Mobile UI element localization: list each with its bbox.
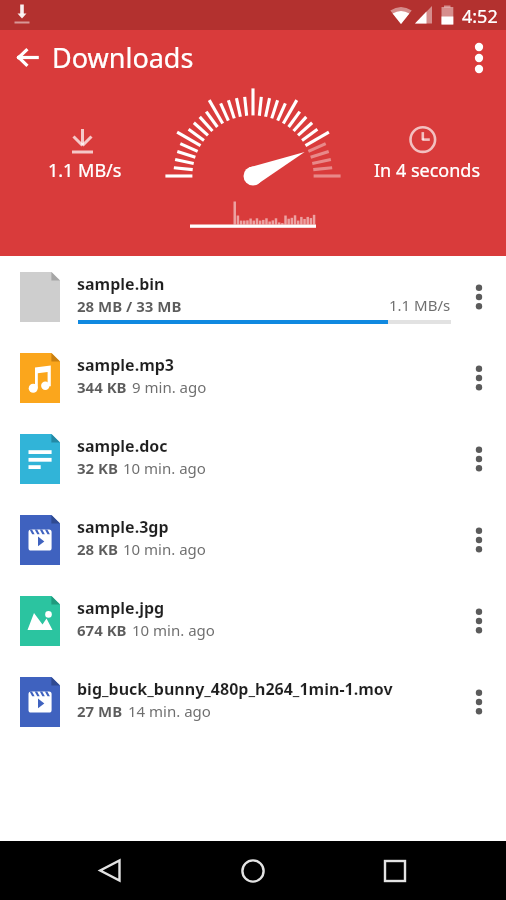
staticText: 10 min. ago — [132, 620, 215, 640]
button[interactable]: sample.bin — [0, 256, 506, 337]
staticText: 344 KB — [77, 377, 127, 397]
button[interactable]: Back — [4, 30, 50, 86]
button[interactable]: More options — [451, 661, 506, 742]
button[interactable]: More options — [451, 256, 506, 337]
button[interactable]: sample.3gp — [0, 499, 506, 580]
staticText: 674 KB — [77, 620, 127, 640]
staticText: In 4 seconds — [374, 158, 481, 183]
button[interactable]: More options — [451, 499, 506, 580]
staticText: 28 KB — [77, 539, 118, 559]
button[interactable]: big_buck_bunny_480p_h264_1min-1.mov — [0, 661, 506, 742]
staticText: sample.mp3 — [77, 354, 175, 376]
staticText: sample.bin — [77, 273, 165, 295]
staticText: 4:52 — [462, 4, 498, 29]
button[interactable]: Home — [217, 841, 289, 900]
button[interactable]: sample.doc — [0, 418, 506, 499]
button[interactable]: Back — [74, 841, 146, 900]
staticText: big_buck_bunny_480p_h264_1min-1.mov — [77, 678, 393, 700]
button[interactable]: More options — [451, 337, 506, 418]
staticText: sample.jpg — [77, 597, 165, 619]
staticText: 1.1 MB/s — [48, 158, 122, 183]
button[interactable]: Recents — [359, 841, 431, 900]
staticText: 10 min. ago — [123, 458, 206, 478]
staticText: 28 MB / 33 MB — [77, 296, 182, 316]
button[interactable]: More options — [451, 418, 506, 499]
button[interactable]: sample.mp3 — [0, 337, 506, 418]
staticText: 32 KB — [77, 458, 118, 478]
button[interactable]: More options — [451, 580, 506, 661]
staticText: 9 min. ago — [132, 377, 207, 397]
staticText: Downloads — [52, 39, 194, 76]
staticText: sample.3gp — [77, 516, 169, 538]
button[interactable]: sample.jpg — [0, 580, 506, 661]
staticText: 27 MB — [77, 701, 123, 721]
staticText: sample.doc — [77, 435, 168, 457]
staticText: 14 min. ago — [128, 701, 211, 721]
staticText: 1.1 MB/s — [389, 295, 451, 315]
other: Download speed — [70, 129, 95, 154]
staticText: 10 min. ago — [123, 539, 206, 559]
other: Remaining time — [409, 126, 437, 154]
button[interactable]: More options — [454, 30, 506, 86]
